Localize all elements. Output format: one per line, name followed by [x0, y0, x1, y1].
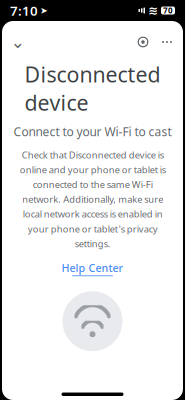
staticText: Disconnected device: [24, 60, 160, 117]
button[interactable]: Settings: [131, 31, 155, 53]
staticText: ➤: [40, 5, 48, 16]
staticText: Check that Disconnected device is online…: [19, 149, 165, 250]
button[interactable]: More options: [155, 31, 179, 53]
staticText: Help Center: [61, 261, 123, 275]
staticText: ⌄: [10, 32, 25, 52]
button[interactable]: Help Center: [53, 257, 131, 280]
staticText: 70: [163, 5, 173, 16]
staticText: Connect to your Wi-Fi to cast: [13, 124, 171, 140]
staticText: 7:10: [10, 2, 38, 19]
button[interactable]: Collapse: [6, 31, 30, 53]
staticText: ≋: [148, 4, 158, 17]
